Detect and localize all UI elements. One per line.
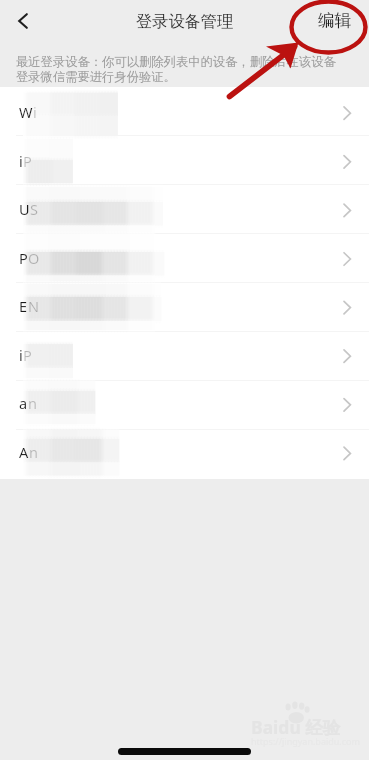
button[interactable] [0, 332, 369, 381]
button[interactable] [0, 87, 369, 136]
staticText: A [19, 442, 29, 462]
button[interactable] [0, 234, 369, 283]
button[interactable] [0, 185, 369, 234]
staticText: N [28, 296, 40, 316]
button[interactable] [0, 430, 369, 479]
staticText: U [19, 199, 30, 219]
staticText: P [23, 345, 32, 365]
staticText: n [28, 393, 37, 413]
staticText: P [23, 151, 32, 171]
staticText: 登录设备管理 [136, 11, 234, 31]
staticText: n [29, 442, 38, 462]
staticText: O [28, 248, 40, 268]
staticText: i [19, 151, 23, 171]
staticText: S [30, 199, 38, 219]
staticText: Baidu 经验 [251, 715, 341, 739]
button[interactable]: Back [0, 0, 46, 41]
staticText: 最近登录设备：你可以删除列表中的设备，删除后在该设备 登录微信需要进行身份验证。 [16, 54, 336, 85]
button[interactable] [0, 136, 369, 185]
staticText: a [19, 393, 28, 413]
button[interactable] [0, 381, 369, 430]
staticText: 编辑 [318, 10, 352, 31]
staticText: i [33, 102, 37, 122]
button[interactable] [0, 283, 369, 332]
button[interactable]: 编辑 [306, 0, 369, 41]
staticText: W [19, 102, 33, 122]
staticText: i [19, 345, 23, 365]
staticText: P [19, 248, 28, 268]
staticText: E [19, 296, 28, 316]
